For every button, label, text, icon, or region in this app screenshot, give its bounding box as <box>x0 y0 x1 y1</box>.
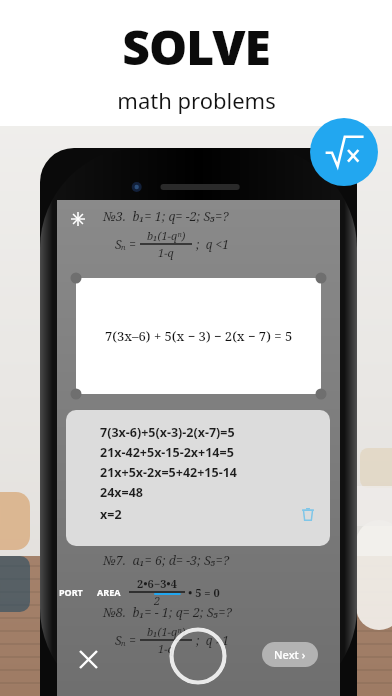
staticText: PORT <box>59 586 83 598</box>
button[interactable]: Next › <box>262 642 318 667</box>
staticText: Sₙ = <box>115 632 137 648</box>
button[interactable]: Delete <box>298 504 318 524</box>
staticText: 7(3x–6) + 5(x − 3) − 2(x − 7) = 5 <box>105 327 293 345</box>
button[interactable]: Open math solver <box>310 118 378 186</box>
button[interactable]: Capture <box>169 627 227 685</box>
staticText: • 5 = 0 <box>188 585 220 600</box>
staticText: ; q <1 <box>196 236 229 252</box>
staticText: Next › <box>274 647 306 662</box>
staticText: 2•6−3•4 <box>137 576 177 591</box>
staticText: 2 <box>154 593 161 608</box>
staticText: 24x=48 <box>100 484 143 501</box>
staticText: SOLVE <box>122 14 270 79</box>
staticText: №7. a₁= 6; d= -3; S₅=? <box>103 552 229 569</box>
staticText: AREA <box>97 586 121 598</box>
button[interactable]: Close <box>71 642 105 676</box>
staticText: 21x-42+5x-15-2x+14=5 <box>100 444 234 461</box>
staticText: №8. b₁= - 1; q= 2; S₅=? <box>103 604 232 621</box>
button[interactable]: 7(3x–6) + 5(x − 3) − 2(x − 7) = 5 <box>76 278 321 394</box>
staticText: b₁(1−qⁿ) <box>147 624 186 639</box>
staticText: 1−q <box>158 245 174 260</box>
staticText: x=2 <box>100 506 122 523</box>
staticText: 7(3x-6)+5(x-3)-2(x-7)=5 <box>100 424 235 441</box>
button[interactable]: Flash <box>67 208 89 230</box>
button[interactable]: 7(3x-6)+5(x-3)-2(x-7)=5 <box>66 410 330 546</box>
staticText: 21x+5x-2x=5+42+15-14 <box>100 464 237 481</box>
staticText: Sₙ = <box>115 236 137 252</box>
staticText: math problems <box>117 85 276 115</box>
staticText: 1−q <box>158 641 174 656</box>
staticText: №3. b₁= 1; q= -2; S₅=? <box>103 208 229 225</box>
staticText: b₁(1−qⁿ) <box>147 228 186 243</box>
staticText: ; q >1 <box>196 632 229 648</box>
